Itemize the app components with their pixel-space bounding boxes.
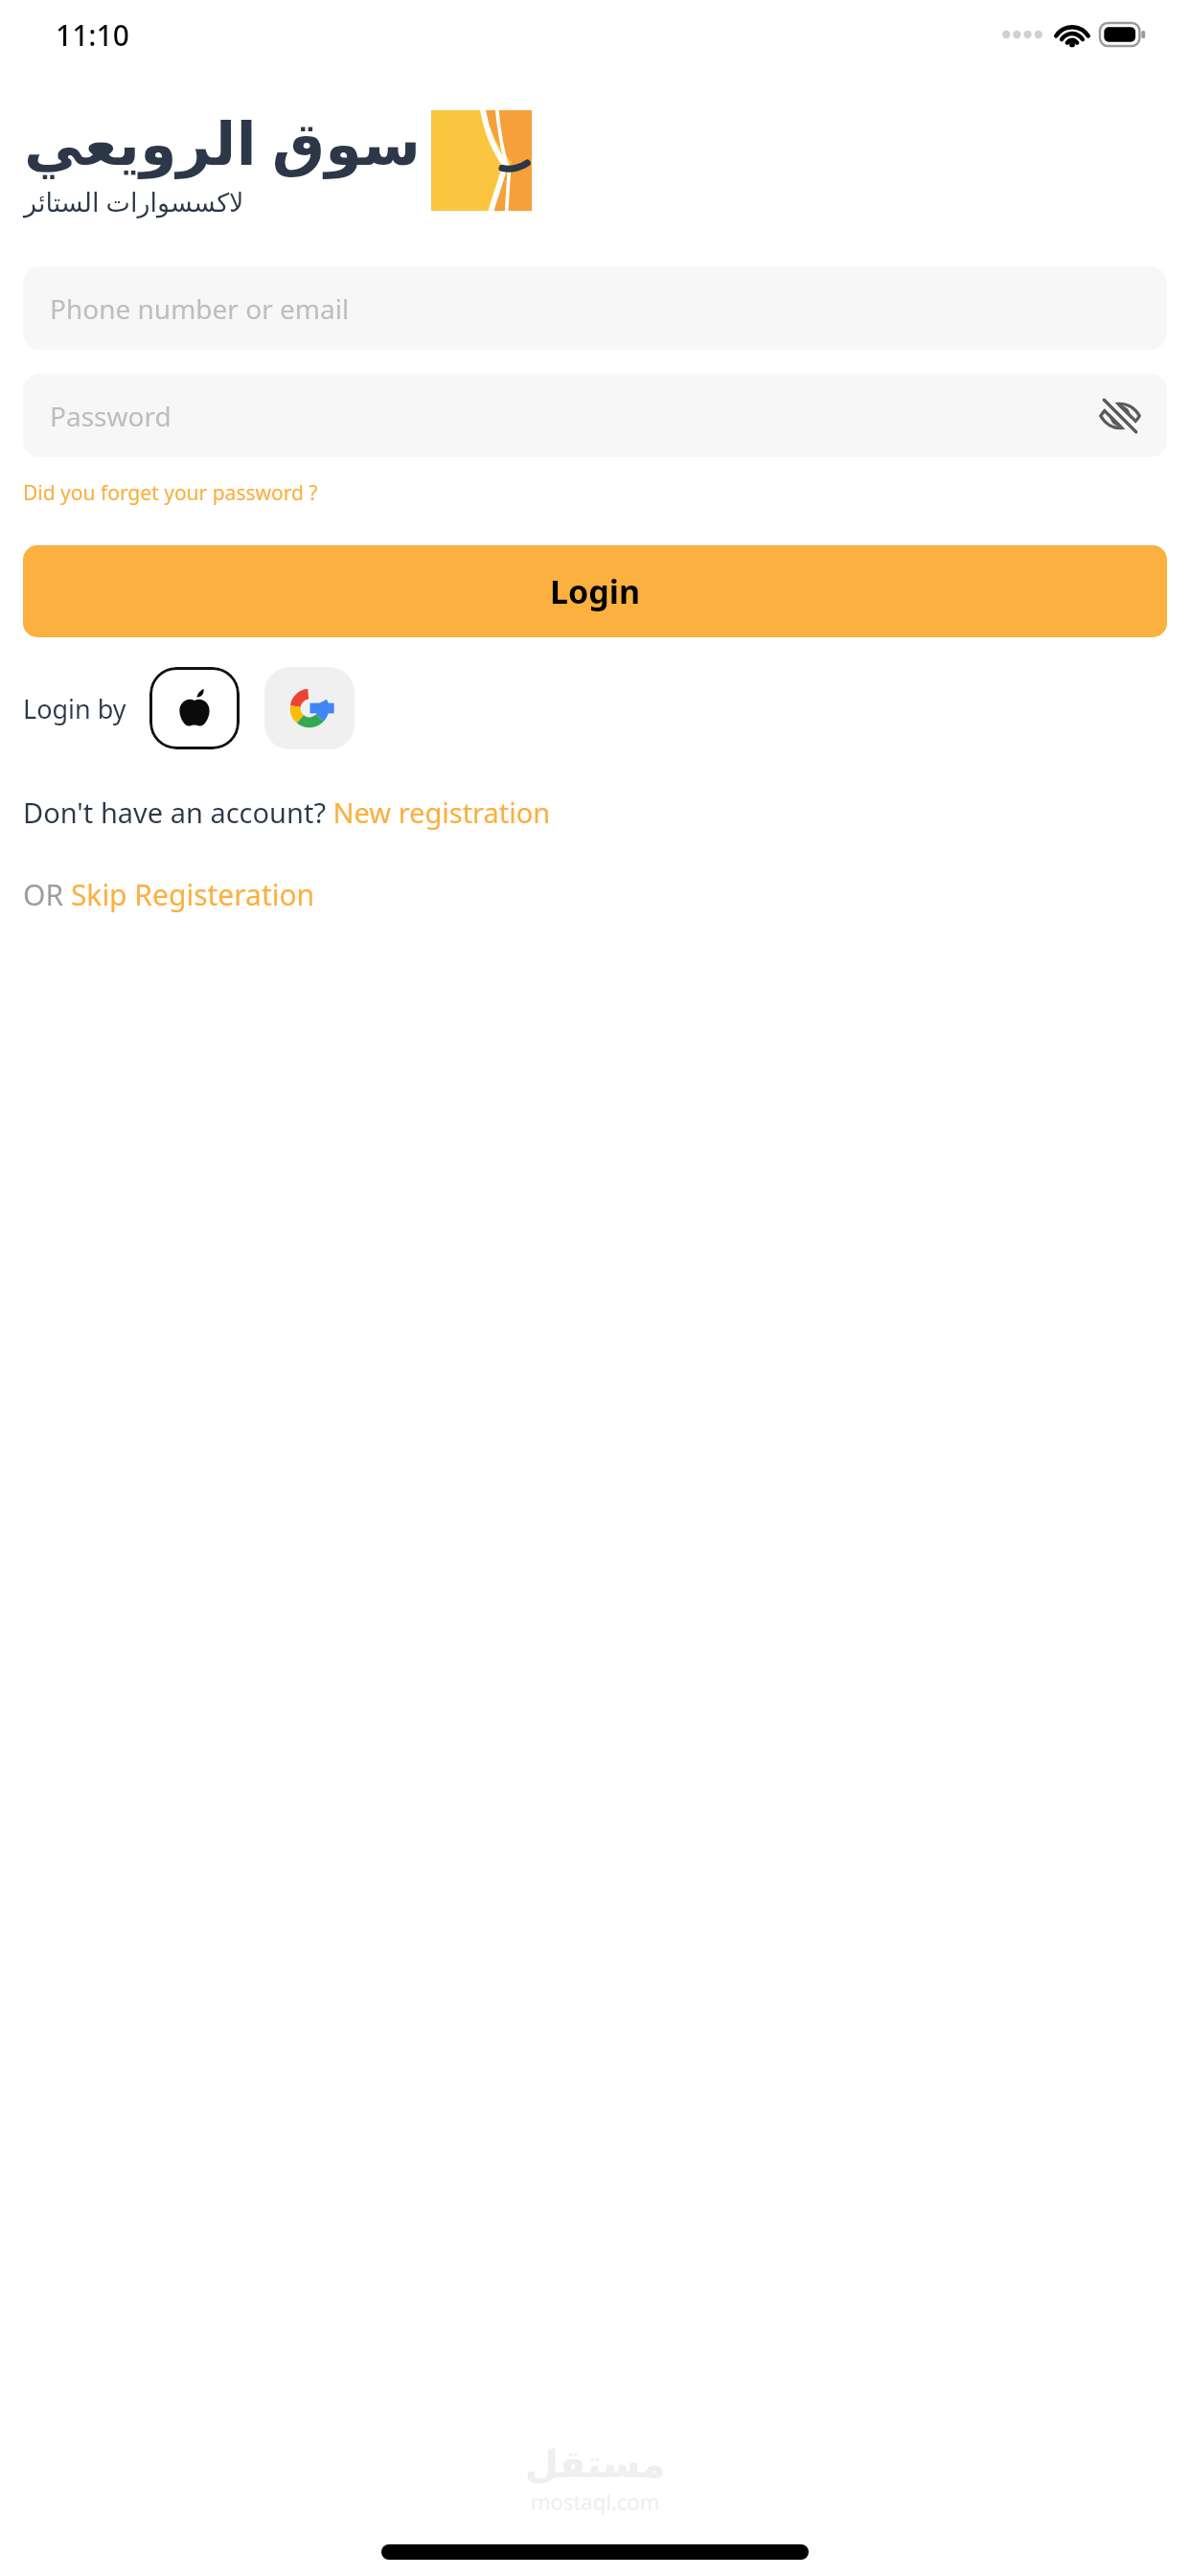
staticText: 11:10 xyxy=(56,15,129,55)
staticText: OR Skip Registeration xyxy=(23,875,315,914)
staticText: Login xyxy=(550,569,641,613)
button[interactable]: Show password xyxy=(1098,394,1142,438)
staticText: لاكسسوارات الستائر xyxy=(24,184,244,219)
button[interactable]: Login xyxy=(23,545,1167,637)
button[interactable]: Sign in with Google xyxy=(264,667,355,749)
staticText: Did you forget your password ? xyxy=(23,479,318,507)
staticText: Login by xyxy=(23,691,126,726)
button[interactable]: Phone number or email xyxy=(23,266,1167,350)
button[interactable]: Sign in with Apple xyxy=(149,667,240,749)
button[interactable]: Did you forget your password ? xyxy=(23,476,318,510)
button[interactable]: OR Skip Registeration xyxy=(23,872,315,917)
button[interactable]: Don't have an account? New registration xyxy=(23,791,551,834)
button[interactable]: Password xyxy=(23,374,1167,457)
staticText: سوق الرويعي xyxy=(24,102,422,182)
staticText: مستقل xyxy=(525,2442,666,2487)
staticText: Don't have an account? New registration xyxy=(23,793,551,831)
staticText: Password xyxy=(50,398,172,434)
staticText: Phone number or email xyxy=(50,290,350,327)
staticText: mostaql.com xyxy=(531,2487,660,2516)
